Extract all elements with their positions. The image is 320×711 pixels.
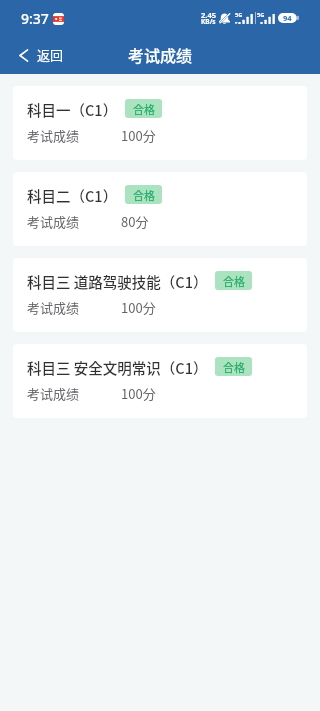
- staticText: 100分: [121, 384, 156, 403]
- staticText: 考试成绩: [27, 298, 80, 317]
- staticText: 5G: [257, 11, 265, 19]
- staticText: 合格: [133, 101, 155, 117]
- button[interactable]: 科目三 安全文明常识（C1）: [13, 344, 307, 418]
- button[interactable]: 科目一（C1）: [13, 86, 307, 160]
- staticText: 考试成绩: [27, 212, 80, 231]
- staticText: 9:37: [21, 9, 49, 28]
- staticText: 科目一（C1）: [27, 99, 118, 120]
- staticText: 科目三 安全文明常识（C1）: [27, 357, 208, 378]
- staticText: 5G: [235, 11, 243, 19]
- staticText: 考试成绩: [27, 384, 80, 403]
- staticText: 合格: [223, 359, 245, 375]
- button[interactable]: 科目二（C1）: [13, 172, 307, 246]
- staticText: 科目三 道路驾驶技能（C1）: [27, 271, 208, 292]
- other: 返回: [19, 49, 28, 62]
- staticText: 合格: [223, 273, 245, 289]
- staticText: 94: [283, 13, 292, 23]
- other: 静音: [219, 13, 230, 24]
- button[interactable]: 科目三 道路驾驶技能（C1）: [13, 258, 307, 332]
- staticText: KB/s: [201, 17, 216, 26]
- staticText: 100分: [121, 126, 156, 145]
- staticText: 返回: [37, 45, 64, 64]
- staticText: 100分: [121, 298, 156, 317]
- staticText: 80分: [121, 212, 149, 231]
- staticText: 考试成绩: [128, 43, 193, 66]
- staticText: 合格: [133, 187, 155, 203]
- staticText: 科目二（C1）: [27, 185, 118, 206]
- staticText: 2.45: [201, 10, 216, 20]
- staticText: 考试成绩: [27, 126, 80, 145]
- button[interactable]: 返回: [0, 38, 78, 73]
